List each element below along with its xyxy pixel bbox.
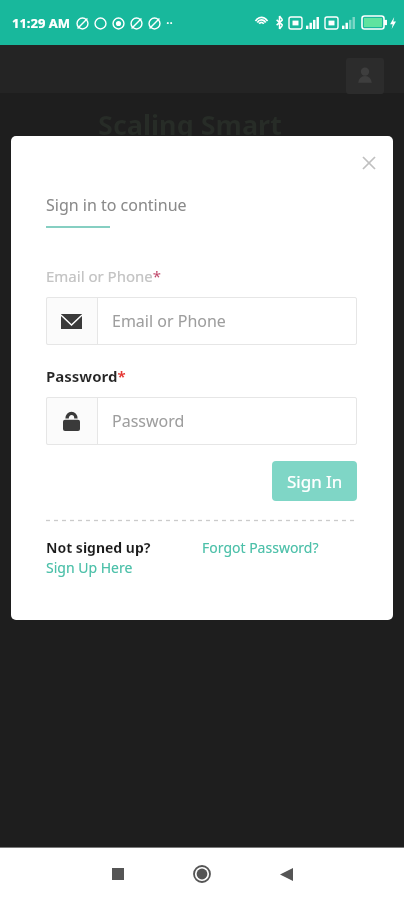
- staticText: Email or Phone: [112, 310, 226, 332]
- staticText: Not signed up?Sign Up Here: [46, 538, 179, 578]
- staticText: ··: [166, 14, 173, 32]
- staticText: Password*: [46, 366, 126, 386]
- button[interactable]: Not signed up?Sign Up Here: [46, 538, 179, 578]
- button[interactable]: Account: [346, 58, 384, 94]
- staticText: Sign in to continue: [46, 194, 187, 216]
- button[interactable]: Sign In: [272, 461, 357, 501]
- staticText: 11:29 AM: [12, 14, 71, 32]
- button[interactable]: Close: [352, 146, 386, 180]
- staticText: Password: [112, 410, 185, 432]
- staticText: Email or Phone*: [46, 266, 162, 286]
- staticText: Forgot Password?: [202, 538, 319, 557]
- button[interactable]: Back: [258, 848, 314, 900]
- button[interactable]: Forgot Password?: [202, 538, 319, 557]
- button[interactable]: Email or Phone: [46, 297, 357, 345]
- button[interactable]: Home: [174, 848, 230, 900]
- button[interactable]: Password: [46, 397, 357, 445]
- staticText: Scaling Smart: [98, 106, 282, 143]
- staticText: Sign In: [287, 470, 343, 493]
- button[interactable]: Recents: [90, 848, 146, 900]
